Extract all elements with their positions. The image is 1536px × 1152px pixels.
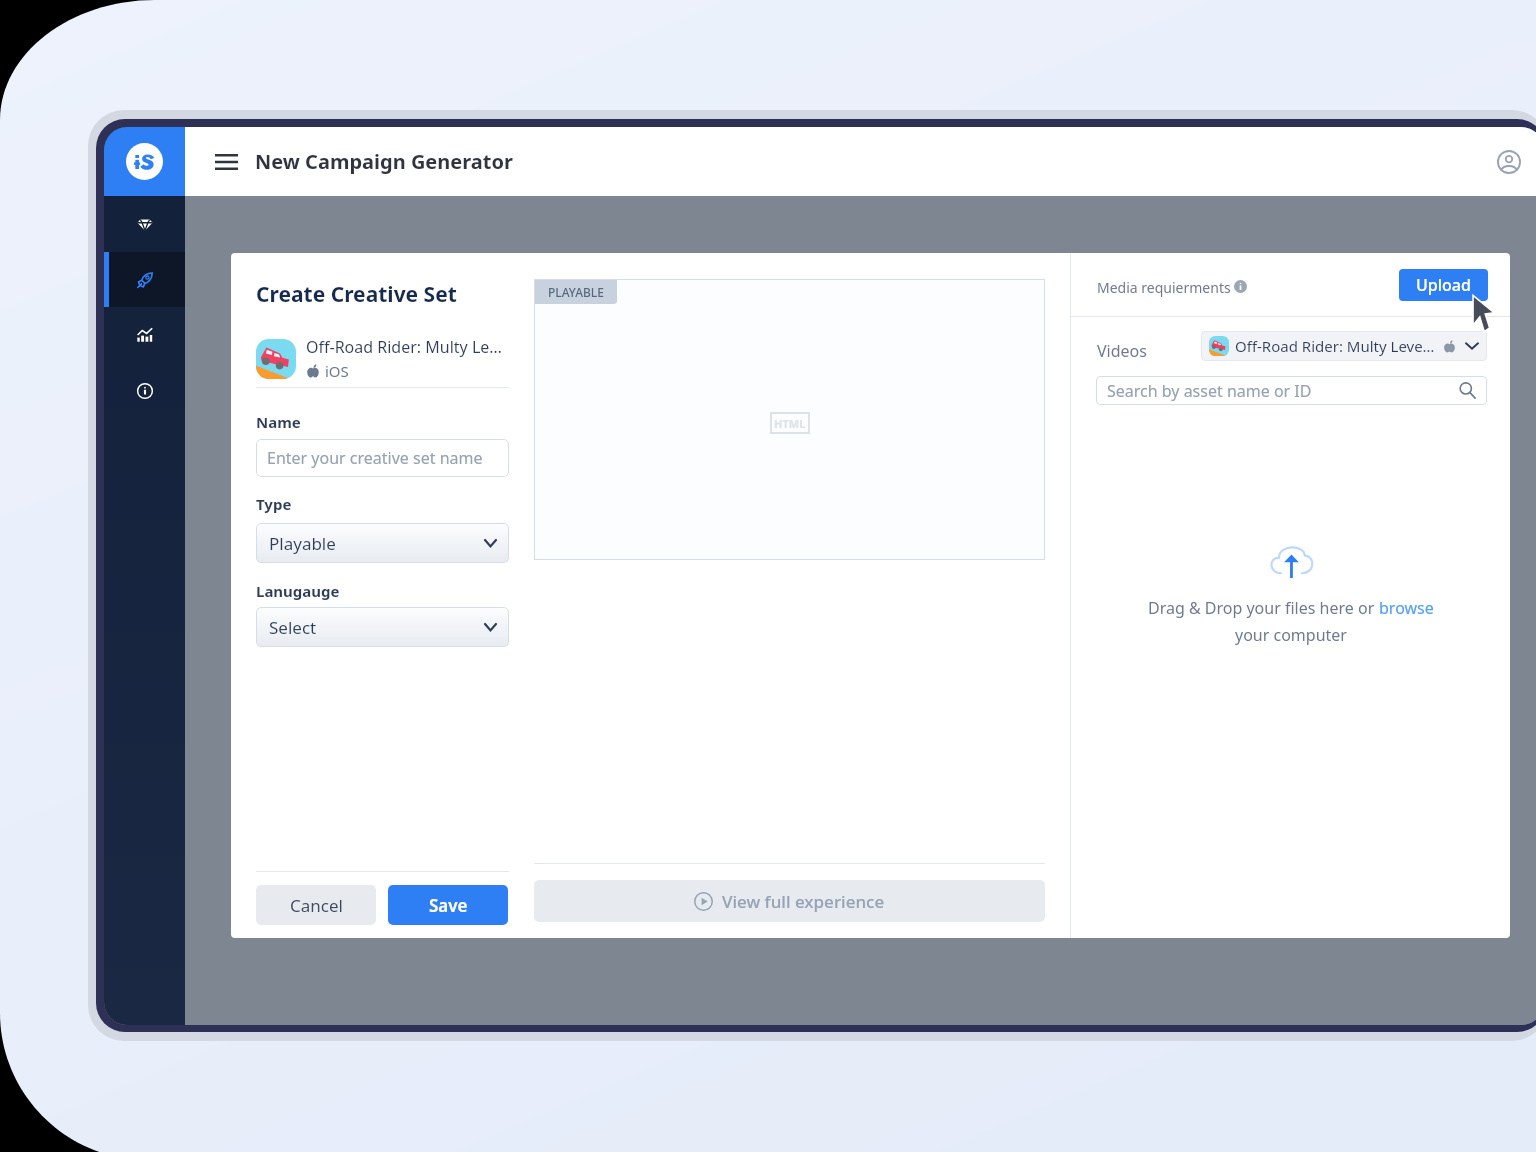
staticText: Name (256, 412, 301, 432)
staticText: New Campaign Generator (255, 148, 513, 175)
staticText: Select (269, 616, 317, 639)
staticText: Drag & Drop your files here or (1148, 597, 1379, 619)
button[interactable]: Upload (1399, 269, 1488, 301)
staticText: PLAYABLE (548, 284, 604, 300)
staticText: Search by asset name or ID (1107, 380, 1312, 402)
staticText: your computer (1235, 624, 1347, 646)
staticText: browse (1379, 597, 1434, 619)
button[interactable]: View full experience (534, 880, 1045, 922)
button[interactable]: Account (1487, 140, 1531, 184)
staticText: Media requierments (1097, 278, 1231, 297)
staticText: HTML (774, 416, 806, 431)
staticText: Create Creative Set (256, 280, 457, 309)
button[interactable]: Enter your creative set name (256, 439, 509, 477)
button[interactable]: browse (1379, 597, 1434, 619)
button[interactable]: Save (388, 885, 508, 925)
staticText: View full experience (722, 890, 885, 913)
staticText: Type (256, 494, 292, 514)
staticText: Enter your creative set name (267, 447, 483, 469)
staticText: Off-Road Rider: Multy Le… (306, 336, 502, 358)
button[interactable]: Playable (256, 523, 509, 563)
button[interactable]: Creatives (104, 196, 185, 252)
button[interactable]: Cancel (256, 885, 376, 925)
button[interactable]: Off-Road Rider: Multy Leve… (1201, 331, 1487, 361)
button[interactable]: Select (256, 607, 509, 647)
button[interactable]: Info (104, 363, 185, 419)
button[interactable]: Campaigns (104, 252, 185, 307)
button[interactable]: ironSource home (104, 127, 185, 196)
staticText: Off-Road Rider: Multy Leve… (1235, 336, 1435, 356)
staticText: Playable (269, 532, 336, 555)
staticText: Lanugauge (256, 581, 340, 601)
staticText: iOS (325, 361, 349, 381)
button[interactable]: Search by asset name or ID (1096, 376, 1487, 405)
staticText: Videos (1097, 340, 1147, 362)
staticText: Upload (1416, 274, 1471, 296)
staticText: Cancel (290, 894, 343, 917)
button[interactable]: Menu (206, 142, 246, 182)
staticText: Save (429, 894, 468, 917)
button[interactable]: Analytics (104, 307, 185, 363)
